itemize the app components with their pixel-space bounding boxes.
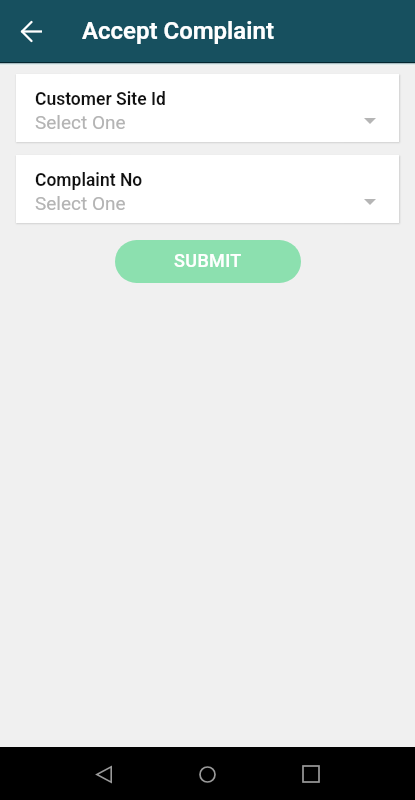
button[interactable]: Back [9, 9, 54, 54]
button[interactable]: SUBMIT [115, 240, 301, 283]
button[interactable]: Customer Site Id [16, 74, 399, 142]
staticText: Select One [35, 192, 126, 214]
staticText: Complaint No [35, 170, 143, 191]
staticText: SUBMIT [174, 250, 242, 271]
button[interactable]: Back [84, 754, 124, 794]
staticText: Select One [35, 111, 126, 133]
button[interactable]: Recent apps [291, 754, 331, 794]
button[interactable]: Complaint No [16, 155, 399, 223]
staticText: Accept Complaint [82, 17, 274, 45]
staticText: Customer Site Id [35, 89, 166, 110]
button[interactable]: Home [187, 754, 227, 794]
